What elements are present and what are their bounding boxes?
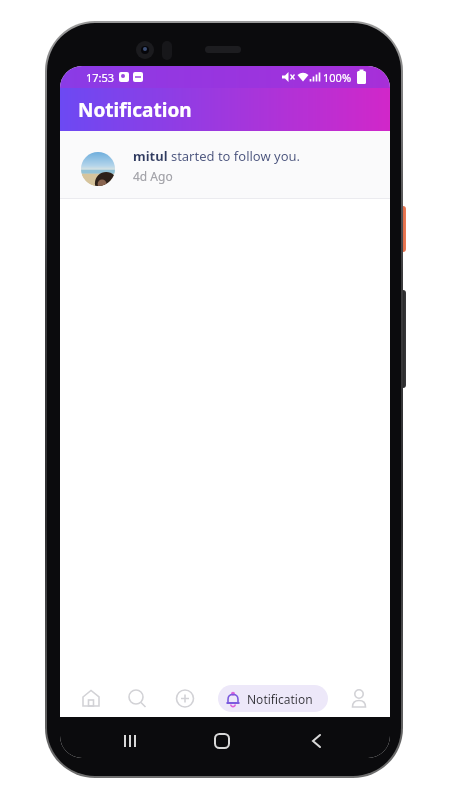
staticText: 100% — [323, 70, 352, 85]
button[interactable]: Notification — [218, 685, 328, 712]
staticText: Notification — [247, 691, 313, 707]
button[interactable] — [173, 687, 197, 711]
staticText: 17:53 — [86, 70, 115, 85]
staticText: mitul started to follow you. — [133, 147, 301, 165]
staticText: Notification — [78, 97, 192, 123]
button[interactable] — [347, 687, 371, 711]
staticText: 4d Ago — [133, 168, 173, 184]
button[interactable] — [79, 687, 103, 711]
button[interactable]: mitul started to follow you. — [60, 131, 390, 198]
button[interactable] — [125, 687, 149, 711]
